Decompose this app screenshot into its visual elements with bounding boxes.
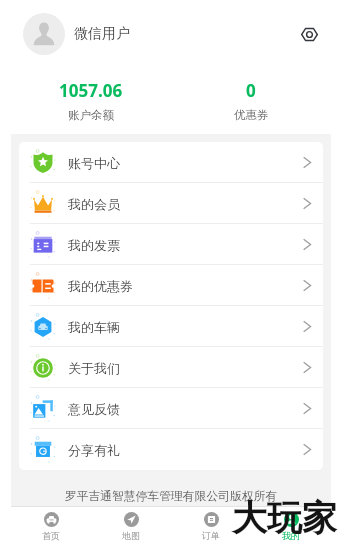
staticText: 账号中心 — [68, 155, 120, 171]
button[interactable]: 账号中心 — [19, 142, 323, 183]
button[interactable]: 我的会员 — [19, 183, 323, 224]
staticText: 分享有礼 — [68, 442, 120, 458]
button[interactable]: 分享有礼 — [19, 429, 323, 470]
button[interactable]: Avatar — [23, 13, 65, 55]
button[interactable]: 1057.06 — [11, 67, 171, 134]
staticText: 我的会员 — [68, 196, 120, 212]
button[interactable]: Settings — [297, 22, 321, 46]
button[interactable]: 我的车辆 — [19, 306, 323, 347]
staticText: 0 — [246, 79, 256, 102]
button[interactable]: 我的优惠券 — [19, 265, 323, 306]
button[interactable]: 我的发票 — [19, 224, 323, 265]
button[interactable]: 我的 — [251, 507, 331, 546]
button[interactable]: 0 — [171, 67, 331, 134]
staticText: 优惠券 — [234, 108, 269, 122]
staticText: 账户余额 — [68, 108, 114, 122]
button[interactable]: 地图 — [91, 507, 171, 546]
staticText: 我的优惠券 — [68, 278, 133, 294]
button[interactable]: 关于我们 — [19, 347, 323, 388]
staticText: 关于我们 — [68, 360, 120, 376]
staticText: 首页 — [42, 530, 60, 541]
staticText: 我的 — [282, 530, 300, 541]
staticText: 地图 — [122, 530, 140, 541]
staticText: 罗平吉通智慧停车管理有限公司版权所有 — [11, 489, 331, 504]
staticText: 我的发票 — [68, 237, 120, 253]
staticText: 1057.06 — [59, 79, 123, 102]
staticText: 我的车辆 — [68, 319, 120, 335]
staticText: 微信用户 — [74, 25, 130, 43]
staticText: 意见反馈 — [68, 401, 120, 417]
button[interactable]: 首页 — [11, 507, 91, 546]
staticText: 大玩家 — [232, 496, 337, 540]
staticText: 订单 — [202, 530, 220, 541]
button[interactable]: 意见反馈 — [19, 388, 323, 429]
button[interactable]: 订单 — [171, 507, 251, 546]
